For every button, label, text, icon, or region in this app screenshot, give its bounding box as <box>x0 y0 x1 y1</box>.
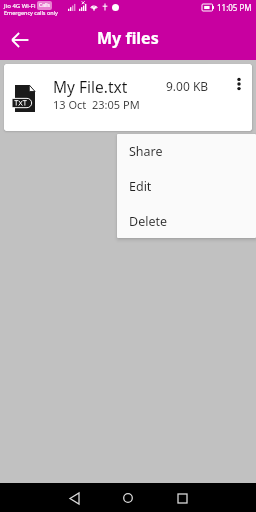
button[interactable]: Home <box>118 488 138 508</box>
staticText: Delete <box>129 213 168 230</box>
button[interactable]: My File.txt <box>4 64 252 131</box>
button[interactable]: Back <box>6 26 34 54</box>
staticText: Calls <box>39 2 50 9</box>
staticText: Emergency calls only <box>4 9 58 16</box>
button[interactable]: Share <box>117 134 256 169</box>
staticText: Share <box>129 143 163 160</box>
button[interactable]: Back <box>64 488 84 508</box>
staticText: Jio 4G Wi-Fi <box>4 2 36 10</box>
staticText: 9.00 KB <box>166 78 209 94</box>
button[interactable]: Recents <box>172 488 192 508</box>
staticText: My files <box>97 27 159 49</box>
button[interactable]: Delete <box>117 204 256 238</box>
staticText: Edit <box>129 178 152 195</box>
staticText: 11:05 PM <box>217 2 252 13</box>
staticText: 13 Oct 23:05 PM <box>53 97 140 112</box>
button[interactable]: Edit <box>117 169 256 204</box>
button[interactable]: More options <box>228 73 250 95</box>
staticText: My File.txt <box>53 76 128 97</box>
